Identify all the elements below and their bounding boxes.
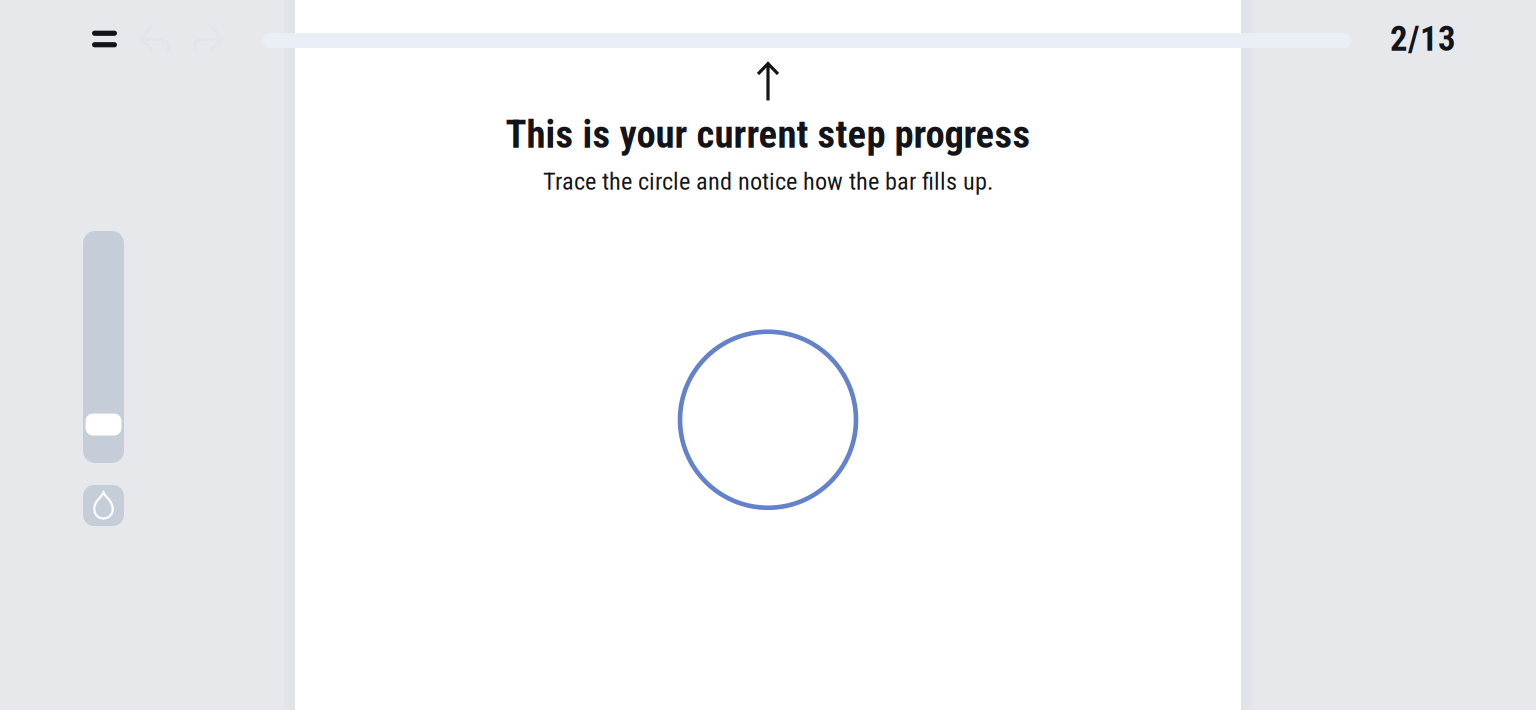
staticText: This is your current step progress [505,112,1030,157]
button[interactable]: Menu [88,19,121,59]
button[interactable]: Brush size [83,231,124,463]
button[interactable]: Water drop tool [83,485,124,526]
staticText: Trace the circle and notice how the bar … [543,167,993,196]
staticText: 2/13 [1390,19,1456,59]
